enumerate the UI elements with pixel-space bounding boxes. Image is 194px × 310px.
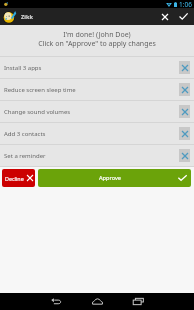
button[interactable]: Remove [179,61,190,74]
button[interactable]: Remove [179,149,190,162]
staticText: I'm done! (John Doe) [63,30,131,40]
button[interactable]: Add 3 contacts [0,123,194,144]
staticText: Click on "Approve" to apply changes [38,39,156,49]
button[interactable]: Recents [123,293,153,310]
button[interactable]: Install 3 apps [0,57,194,78]
staticText: Approve [99,174,121,182]
button[interactable]: Remove [179,127,190,140]
staticText: 1:06 [179,0,192,8]
staticText: Change sound volumes [4,108,71,116]
staticText: Add 3 contacts [4,130,46,138]
button[interactable]: Decline [2,169,35,187]
button[interactable]: Done [175,8,192,25]
staticText: Set a reminder [4,152,46,160]
button[interactable]: Cancel [155,8,175,25]
button[interactable]: Reduce screen sleep time [0,79,194,100]
staticText: Zikk [21,13,33,21]
button[interactable]: Back [41,293,71,310]
button[interactable]: Change sound volumes [0,101,194,122]
staticText: Reduce screen sleep time [4,86,76,94]
staticText: Decline [5,175,24,182]
button[interactable]: Approve [38,169,191,187]
button[interactable]: Remove [179,83,190,96]
button[interactable]: Home [82,293,112,310]
button[interactable]: Remove [179,105,190,118]
staticText: Install 3 apps [4,64,42,72]
button[interactable]: Set a reminder [0,145,194,166]
